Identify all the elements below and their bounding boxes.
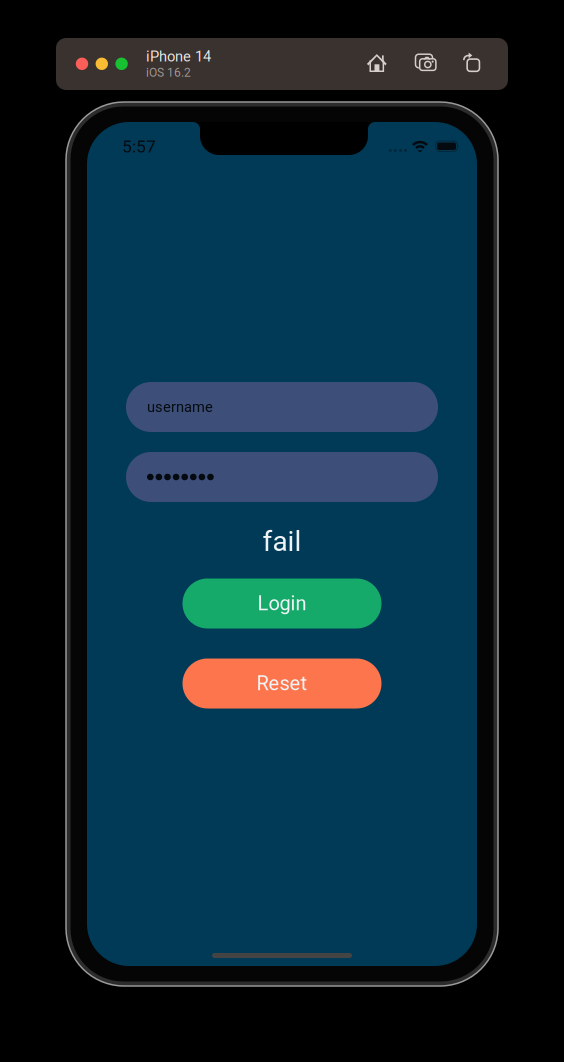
button[interactable]: Minimise window — [96, 58, 108, 70]
button[interactable]: Close window — [76, 58, 88, 70]
button[interactable]: Reset — [182, 658, 381, 708]
staticText: iPhone 14 — [146, 48, 211, 65]
staticText: fail — [262, 525, 301, 558]
staticText: Reset — [256, 672, 307, 695]
button[interactable]: Login — [182, 578, 381, 628]
button[interactable]: Rotate device — [460, 52, 477, 69]
button[interactable]: Take screenshot — [415, 54, 436, 71]
staticText: username — [147, 398, 213, 416]
button[interactable]: Home — [367, 54, 387, 73]
staticText: 5:57 — [122, 136, 156, 157]
button[interactable]: Zoom window — [115, 58, 128, 70]
staticText: Login — [257, 592, 306, 615]
staticText: iOS 16.2 — [146, 65, 191, 80]
